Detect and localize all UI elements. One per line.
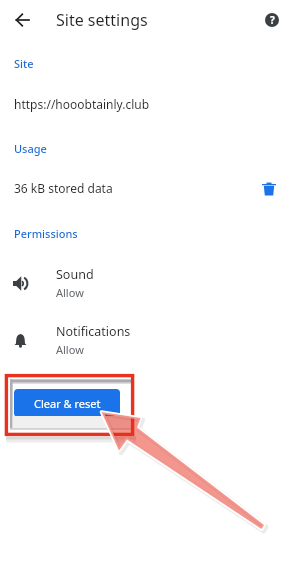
button[interactable]: 36 kB stored data (0, 170, 292, 206)
staticText: Usage (14, 141, 47, 156)
staticText: Permissions (14, 226, 78, 241)
button[interactable]: Help (265, 13, 279, 27)
staticText: 36 kB stored data (14, 180, 113, 196)
button[interactable]: Notifications (0, 317, 292, 363)
button[interactable]: Clear & reset (14, 389, 120, 417)
button[interactable]: Sound (0, 260, 292, 306)
staticText: Allow (56, 342, 84, 357)
staticText: Sound (56, 266, 94, 283)
staticText: ? (270, 13, 275, 27)
staticText: Site settings (56, 9, 148, 31)
staticText: Clear & reset (34, 396, 101, 411)
button[interactable]: Back (8, 8, 32, 32)
staticText: https://hooobtainly.club (14, 96, 150, 112)
staticText: Site (14, 56, 34, 71)
staticText: Allow (56, 285, 84, 300)
staticText: Notifications (56, 323, 131, 340)
button[interactable]: Delete stored data (262, 182, 276, 196)
